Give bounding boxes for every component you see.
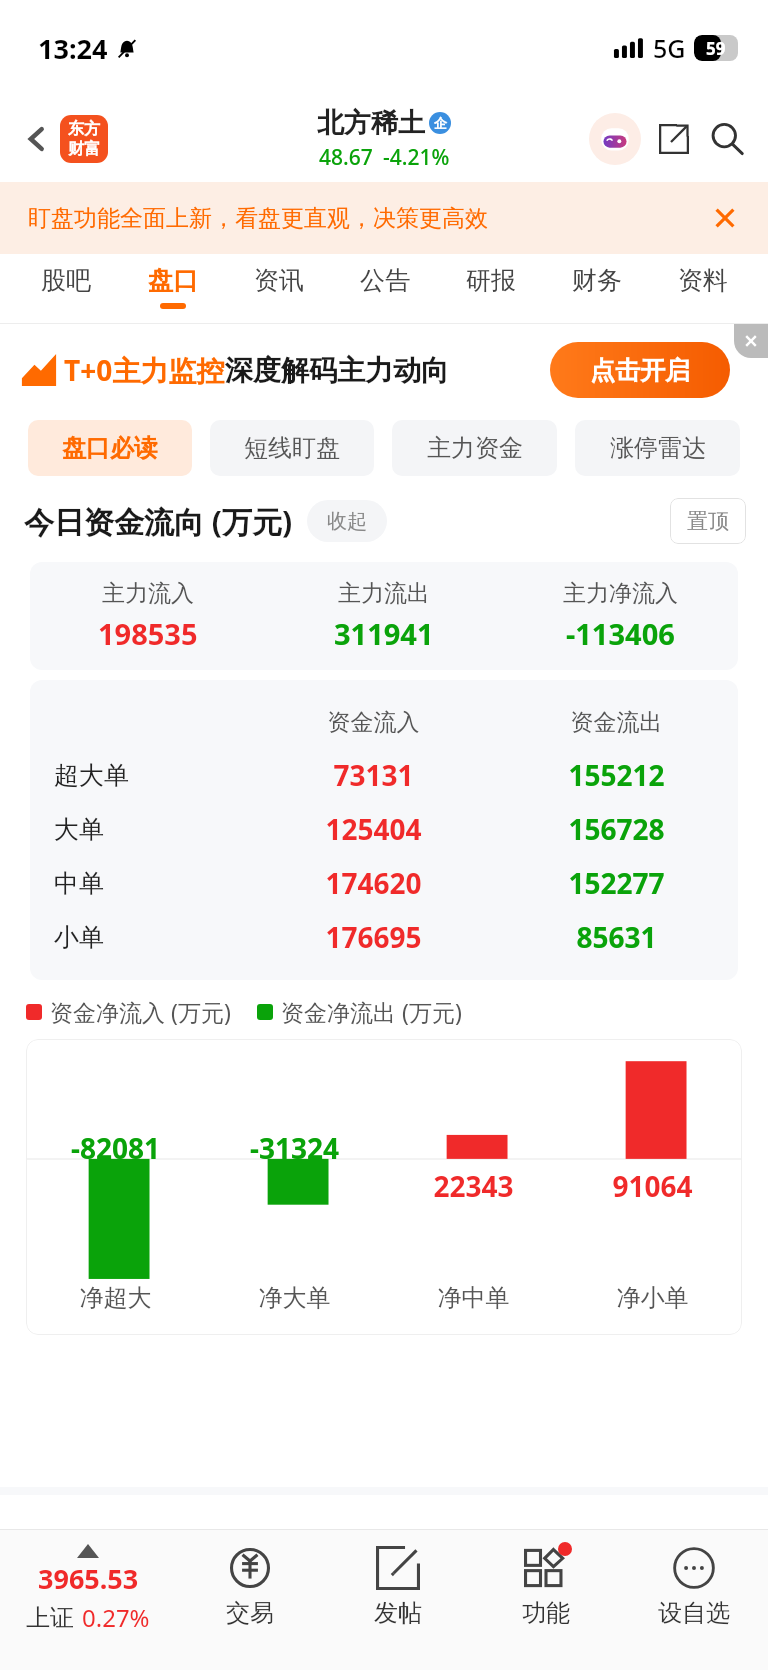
button[interactable]: Close banner (700, 193, 750, 243)
staticText: 东方 (68, 119, 100, 139)
staticText: 152277 (495, 864, 738, 902)
staticText: 涨停雷达 (610, 433, 706, 463)
staticText: 176695 (252, 918, 495, 956)
staticText: 盯盘功能全面上新，看盘更直观，决策更高效 (28, 204, 488, 233)
button[interactable]: 主力资金 (392, 420, 557, 476)
staticText: 85631 (495, 918, 738, 956)
staticText: 主力净流入 (563, 579, 678, 608)
staticText: 73131 (252, 756, 495, 794)
staticText: T+0主力监控 (64, 351, 225, 389)
staticText: 174620 (252, 864, 495, 902)
staticText: 22343 (384, 1167, 563, 1205)
staticText: 公告 (360, 265, 410, 296)
staticText: 资金净流入 (万元) (50, 996, 231, 1027)
button[interactable]: 小单 (30, 910, 738, 964)
staticText: 主力流入 (102, 579, 194, 608)
staticText: -113406 (566, 614, 675, 653)
button[interactable]: 盘口必读 (28, 420, 192, 476)
button[interactable]: Search (700, 112, 754, 166)
staticText: 156728 (495, 810, 738, 848)
button[interactable]: 3965.53 (0, 1530, 176, 1670)
staticText: 资金流出 (495, 708, 738, 737)
button[interactable]: 点击开启 (550, 342, 730, 398)
staticText: 48.67 (319, 143, 373, 172)
staticText: 净超大 (26, 1283, 205, 1313)
button[interactable]: AI assistant (586, 110, 644, 168)
staticText: 财富 (68, 139, 100, 159)
staticText: 研报 (466, 265, 516, 296)
staticText: -82081 (26, 1129, 205, 1167)
staticText: 净中单 (384, 1283, 563, 1313)
staticText: 财务 (572, 265, 622, 296)
staticText: 超大单 (54, 760, 252, 791)
staticText: 198535 (98, 614, 198, 653)
staticText: 主力资金 (427, 433, 523, 463)
button[interactable]: 功能 (472, 1530, 620, 1670)
staticText: 净大单 (205, 1283, 384, 1313)
button[interactable]: Share (648, 113, 700, 165)
staticText: 资金净流出 (万元) (281, 996, 462, 1027)
staticText: 今日资金流向 (万元) (24, 501, 293, 542)
button[interactable]: Close ad (734, 324, 768, 358)
staticText: -4.21% (383, 143, 450, 172)
button[interactable]: 资料 (650, 254, 756, 324)
staticText: 设自选 (658, 1598, 730, 1628)
button[interactable]: 交易 (176, 1530, 324, 1670)
staticText: 155212 (495, 756, 738, 794)
staticText: 资金流入 (252, 708, 495, 737)
button[interactable]: 财务 (544, 254, 650, 324)
staticText: 311941 (334, 614, 434, 653)
staticText: 59 (706, 37, 726, 60)
staticText: 上证 (26, 1603, 74, 1633)
button[interactable]: 收起 (307, 500, 387, 542)
button[interactable]: Eastmoney home (60, 115, 108, 163)
button[interactable]: 股吧 (12, 254, 119, 324)
button[interactable]: 盘口 (119, 254, 226, 324)
staticText: -31324 (205, 1129, 384, 1167)
staticText: 资讯 (254, 265, 304, 296)
button[interactable]: 超大单 (30, 748, 738, 802)
staticText: 功能 (522, 1598, 570, 1628)
staticText: 企 (434, 115, 447, 131)
staticText: 小单 (54, 922, 252, 953)
staticText: 短线盯盘 (244, 433, 340, 463)
staticText: 盘口 (148, 265, 198, 296)
button[interactable]: 公告 (332, 254, 438, 324)
staticText: 北方稀土 (317, 106, 425, 140)
staticText: 125404 (252, 810, 495, 848)
staticText: 点击开启 (590, 355, 690, 386)
button[interactable]: 涨停雷达 (575, 420, 740, 476)
button[interactable]: 资讯 (226, 254, 332, 324)
staticText: 3965.53 (38, 1560, 139, 1597)
button[interactable]: 设自选 (620, 1530, 768, 1670)
staticText: 资料 (678, 265, 728, 296)
button[interactable]: 大单 (30, 802, 738, 856)
staticText: 91064 (563, 1167, 742, 1205)
staticText: 交易 (226, 1598, 274, 1628)
staticText: 盘口必读 (62, 433, 158, 463)
button[interactable]: 发帖 (324, 1530, 472, 1670)
staticText: 净小单 (563, 1283, 742, 1313)
staticText: 深度解码主力动向 (225, 353, 449, 388)
button[interactable]: 短线盯盘 (210, 420, 374, 476)
staticText: 5G (653, 31, 686, 65)
button[interactable]: 置顶 (670, 498, 746, 544)
button[interactable]: 研报 (438, 254, 544, 324)
button[interactable]: 盯盘功能全面上新，看盘更直观，决策更高效 (0, 182, 768, 254)
staticText: 发帖 (374, 1598, 422, 1628)
staticText: 大单 (54, 814, 252, 845)
staticText: 主力流出 (338, 579, 430, 608)
staticText: 中单 (54, 868, 252, 899)
staticText: 13:24 (38, 30, 108, 67)
staticText: 收起 (327, 509, 367, 534)
button[interactable]: Back (14, 116, 60, 162)
button[interactable]: 中单 (30, 856, 738, 910)
staticText: 置顶 (687, 508, 729, 534)
staticText: 股吧 (41, 265, 91, 296)
staticText: 0.27% (82, 1601, 150, 1634)
